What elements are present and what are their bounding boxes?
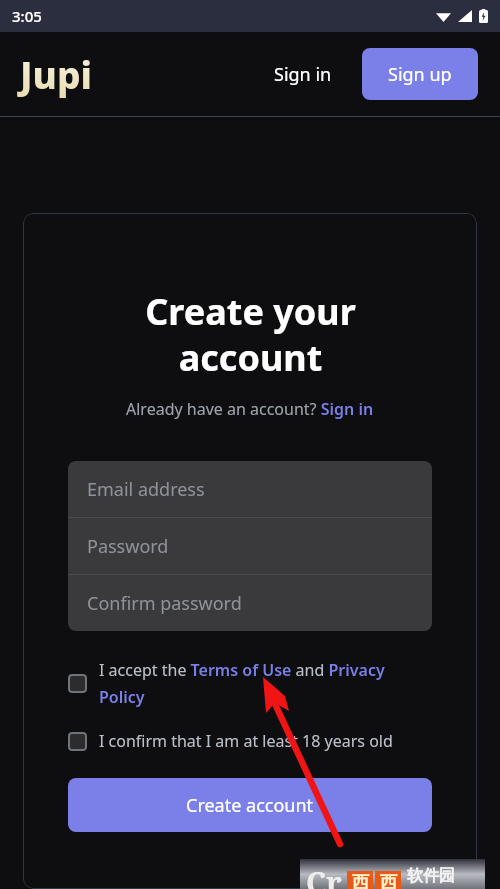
button[interactable]: Confirm password	[68, 575, 432, 631]
staticText: Sign in	[274, 62, 332, 87]
staticText: Cr	[306, 862, 342, 889]
button[interactable]: Sign in	[260, 52, 346, 97]
staticText: Jupi	[20, 49, 93, 99]
button[interactable]: Jupi home	[20, 49, 93, 99]
button[interactable]: Already have an account? Sign in	[126, 398, 374, 420]
staticText: Create account	[186, 793, 314, 818]
staticText: Already have an account? Sign in	[126, 398, 374, 420]
staticText: 软件园	[407, 866, 455, 886]
button[interactable]: Password	[68, 518, 432, 574]
staticText: Email address	[87, 477, 205, 502]
staticText: 西	[380, 872, 397, 889]
staticText: 3:05	[12, 6, 42, 26]
staticText: I confirm that I am at least 18 years ol…	[99, 730, 393, 752]
staticText: I accept the Terms of Use and Privacy Po…	[99, 659, 432, 708]
button[interactable]: Create account	[68, 778, 432, 832]
button[interactable]: Email address	[68, 461, 432, 517]
staticText: Sign up	[388, 62, 452, 87]
button[interactable]: I confirm that I am at least 18 years ol…	[68, 730, 432, 752]
staticText: CA173.COM	[407, 886, 458, 889]
staticText: Confirm password	[87, 591, 242, 616]
button[interactable]: I accept the Terms of Use and Privacy Po…	[68, 659, 432, 708]
staticText: Password	[87, 534, 169, 559]
staticText: 西	[352, 872, 369, 889]
staticText: Create your account	[145, 287, 356, 382]
button[interactable]: Sign up	[362, 48, 478, 100]
